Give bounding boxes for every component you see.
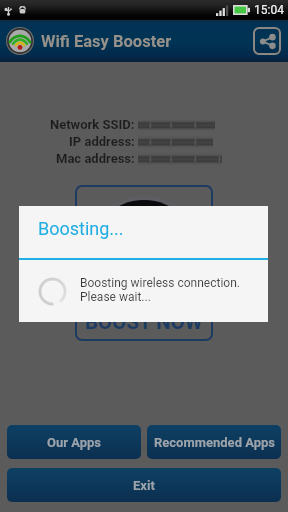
staticText: Boosting... bbox=[38, 218, 124, 239]
button[interactable]: Our Apps bbox=[7, 425, 141, 459]
staticText: Recommended Apps bbox=[154, 435, 275, 450]
staticText: IP address: bbox=[69, 134, 135, 149]
staticText: 15:04 bbox=[254, 3, 284, 17]
button[interactable]: BOOST NOW bbox=[75, 185, 213, 341]
staticText: Boosting wireless connection. bbox=[80, 276, 240, 290]
staticText: Network SSID: bbox=[50, 117, 135, 132]
staticText: Wifi Easy Booster bbox=[41, 32, 172, 51]
button[interactable]: Share bbox=[253, 27, 281, 55]
staticText: Exit bbox=[133, 478, 155, 493]
button[interactable]: Recommended Apps bbox=[147, 425, 281, 459]
button[interactable]: Exit bbox=[7, 468, 281, 502]
staticText: Mac address: bbox=[56, 151, 135, 166]
staticText: Our Apps bbox=[47, 435, 102, 450]
staticText: BOOST NOW bbox=[85, 310, 203, 334]
staticText: Please wait... bbox=[80, 290, 151, 304]
